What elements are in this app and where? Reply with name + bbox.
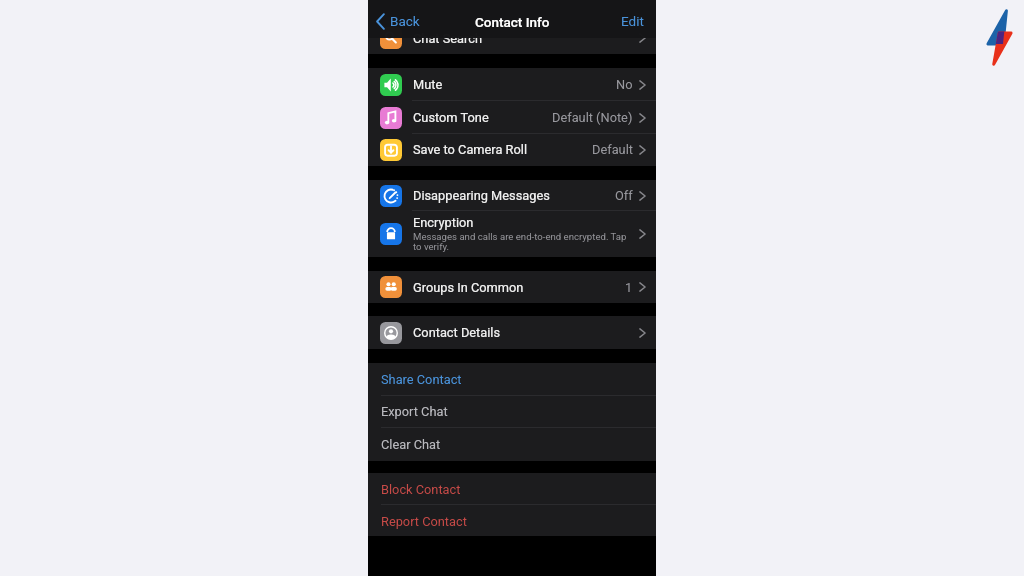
button[interactable]: Encryption — [368, 211, 656, 257]
staticText: Save to Camera Roll — [413, 142, 528, 157]
staticText: Mute — [413, 77, 443, 92]
staticText: Contact Info — [475, 14, 550, 30]
button[interactable]: Contact Details — [368, 316, 656, 349]
button[interactable]: Export Chat — [368, 395, 656, 428]
staticText: 1 — [625, 280, 633, 295]
staticText: Block Contact — [381, 482, 461, 497]
staticText: Edit — [621, 13, 644, 29]
staticText: Disappearing Messages — [413, 188, 550, 203]
staticText: Share Contact — [381, 372, 462, 387]
button[interactable]: Groups In Common — [368, 271, 656, 303]
button[interactable]: Back — [373, 10, 423, 32]
button[interactable]: Edit — [618, 10, 647, 32]
staticText: Clear Chat — [381, 437, 441, 452]
staticText: No — [616, 77, 633, 92]
button[interactable]: Disappearing Messages — [368, 180, 656, 211]
staticText: Messages and calls are end-to-end encryp… — [413, 231, 629, 253]
staticText: Encryption — [413, 215, 474, 230]
button[interactable]: Share Contact — [368, 363, 656, 396]
staticText: Off — [615, 188, 633, 203]
button[interactable]: Block Contact — [368, 473, 656, 505]
button[interactable]: Report Contact — [368, 505, 656, 537]
staticText: Contact Details — [413, 325, 501, 340]
staticText: Groups In Common — [413, 280, 524, 295]
button[interactable]: Chat Search — [368, 22, 656, 54]
staticText: Back — [390, 13, 420, 29]
button[interactable]: Clear Chat — [368, 428, 656, 461]
staticText: Chat Search — [413, 31, 483, 46]
staticText: Custom Tone — [413, 110, 489, 125]
button[interactable]: Save to Camera Roll — [368, 133, 656, 166]
staticText: Default — [592, 142, 633, 157]
staticText: Default (Note) — [552, 110, 633, 125]
button[interactable]: Custom Tone — [368, 101, 656, 134]
staticText: Report Contact — [381, 514, 467, 529]
staticText: Export Chat — [381, 404, 448, 419]
button[interactable]: Mute — [368, 68, 656, 101]
